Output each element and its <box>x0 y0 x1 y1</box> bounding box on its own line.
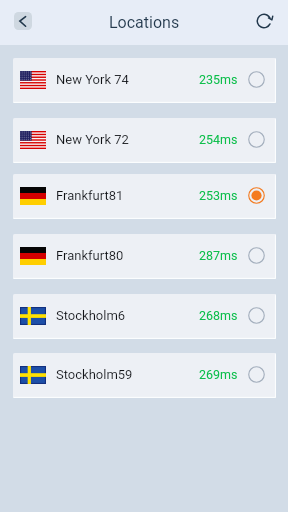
staticText: 235ms <box>199 72 238 87</box>
staticText: 269ms <box>199 367 238 382</box>
staticText: 253ms <box>199 188 238 203</box>
button[interactable]: Refresh <box>254 11 274 31</box>
button[interactable]: New York 72 <box>13 118 276 163</box>
button[interactable]: Back <box>14 12 32 30</box>
button[interactable]: Frankfurt81 <box>13 174 276 219</box>
staticText: New York 74 <box>56 72 129 87</box>
button[interactable]: Frankfurt80 <box>13 234 276 279</box>
staticText: New York 72 <box>56 132 129 147</box>
staticText: Frankfurt81 <box>56 188 124 203</box>
staticText: 287ms <box>199 248 238 263</box>
staticText: Stockholm59 <box>56 367 133 382</box>
button[interactable]: Stockholm6 <box>13 294 276 339</box>
staticText: Stockholm6 <box>56 308 126 323</box>
staticText: 254ms <box>199 132 238 147</box>
button[interactable]: New York 74 <box>13 58 276 103</box>
staticText: Frankfurt80 <box>56 248 124 263</box>
staticText: 268ms <box>199 308 238 323</box>
staticText: Locations <box>109 13 180 32</box>
button[interactable]: Stockholm59 <box>13 353 276 398</box>
